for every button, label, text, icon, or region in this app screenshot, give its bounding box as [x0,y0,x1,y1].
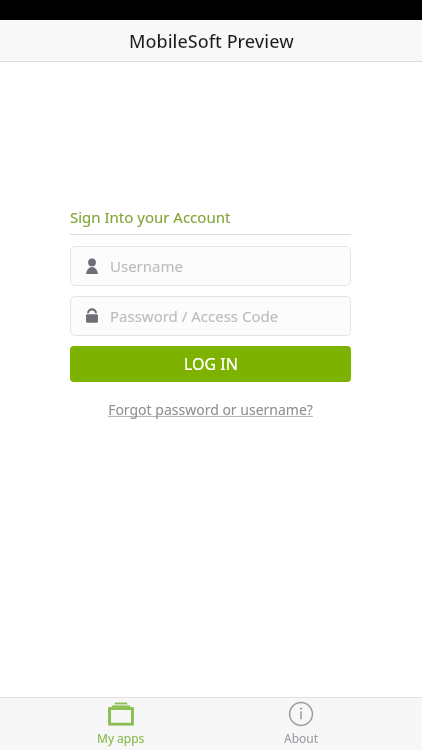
staticText: MobileSoft Preview [129,29,294,54]
staticText: My apps [97,730,145,746]
staticText: Forgot password or username? [108,400,313,419]
button[interactable]: My apps [61,701,181,746]
button[interactable]: Password / Access Code [70,296,351,336]
staticText: Sign Into your Account [70,207,231,227]
button[interactable]: Username [70,246,351,286]
button[interactable]: About [241,701,361,746]
button[interactable]: Forgot password or username? [104,396,317,423]
staticText: About [284,730,319,746]
staticText: Password / Access Code [110,306,279,326]
staticText: LOG IN [184,353,238,375]
button[interactable]: LOG IN [70,346,351,382]
staticText: Username [110,256,183,276]
